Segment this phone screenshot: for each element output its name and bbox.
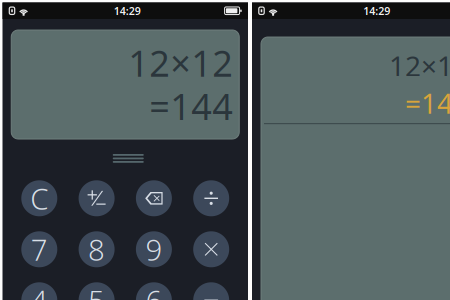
staticText: 4: [31, 281, 48, 300]
button[interactable]: Plus minus: [79, 180, 115, 216]
staticText: =144: [149, 82, 233, 130]
staticText: =14 4: [405, 84, 450, 121]
button[interactable]: 6: [136, 282, 172, 300]
staticText: 8: [88, 230, 105, 269]
button[interactable]: Divide: [193, 180, 229, 216]
staticText: 6: [145, 281, 162, 300]
staticText: C: [30, 179, 48, 218]
button[interactable]: Multiply: [193, 231, 229, 267]
button[interactable]: 7: [21, 231, 57, 267]
staticText: 12×12: [128, 39, 233, 87]
button[interactable]: Subtract: [193, 282, 229, 300]
button[interactable]: C: [21, 180, 57, 216]
button[interactable]: Resize display: [103, 150, 154, 167]
button[interactable]: 9: [136, 231, 172, 267]
staticText: 12×1 2: [389, 47, 450, 84]
button[interactable]: 5: [79, 282, 115, 300]
staticText: 14:29: [114, 4, 141, 18]
staticText: 14:29: [363, 4, 390, 18]
staticText: 7: [31, 230, 48, 269]
button[interactable]: 8: [79, 231, 115, 267]
staticText: 9: [145, 230, 162, 269]
staticText: 5: [88, 281, 105, 300]
button[interactable]: Backspace: [136, 180, 172, 216]
button[interactable]: 4: [21, 282, 57, 300]
